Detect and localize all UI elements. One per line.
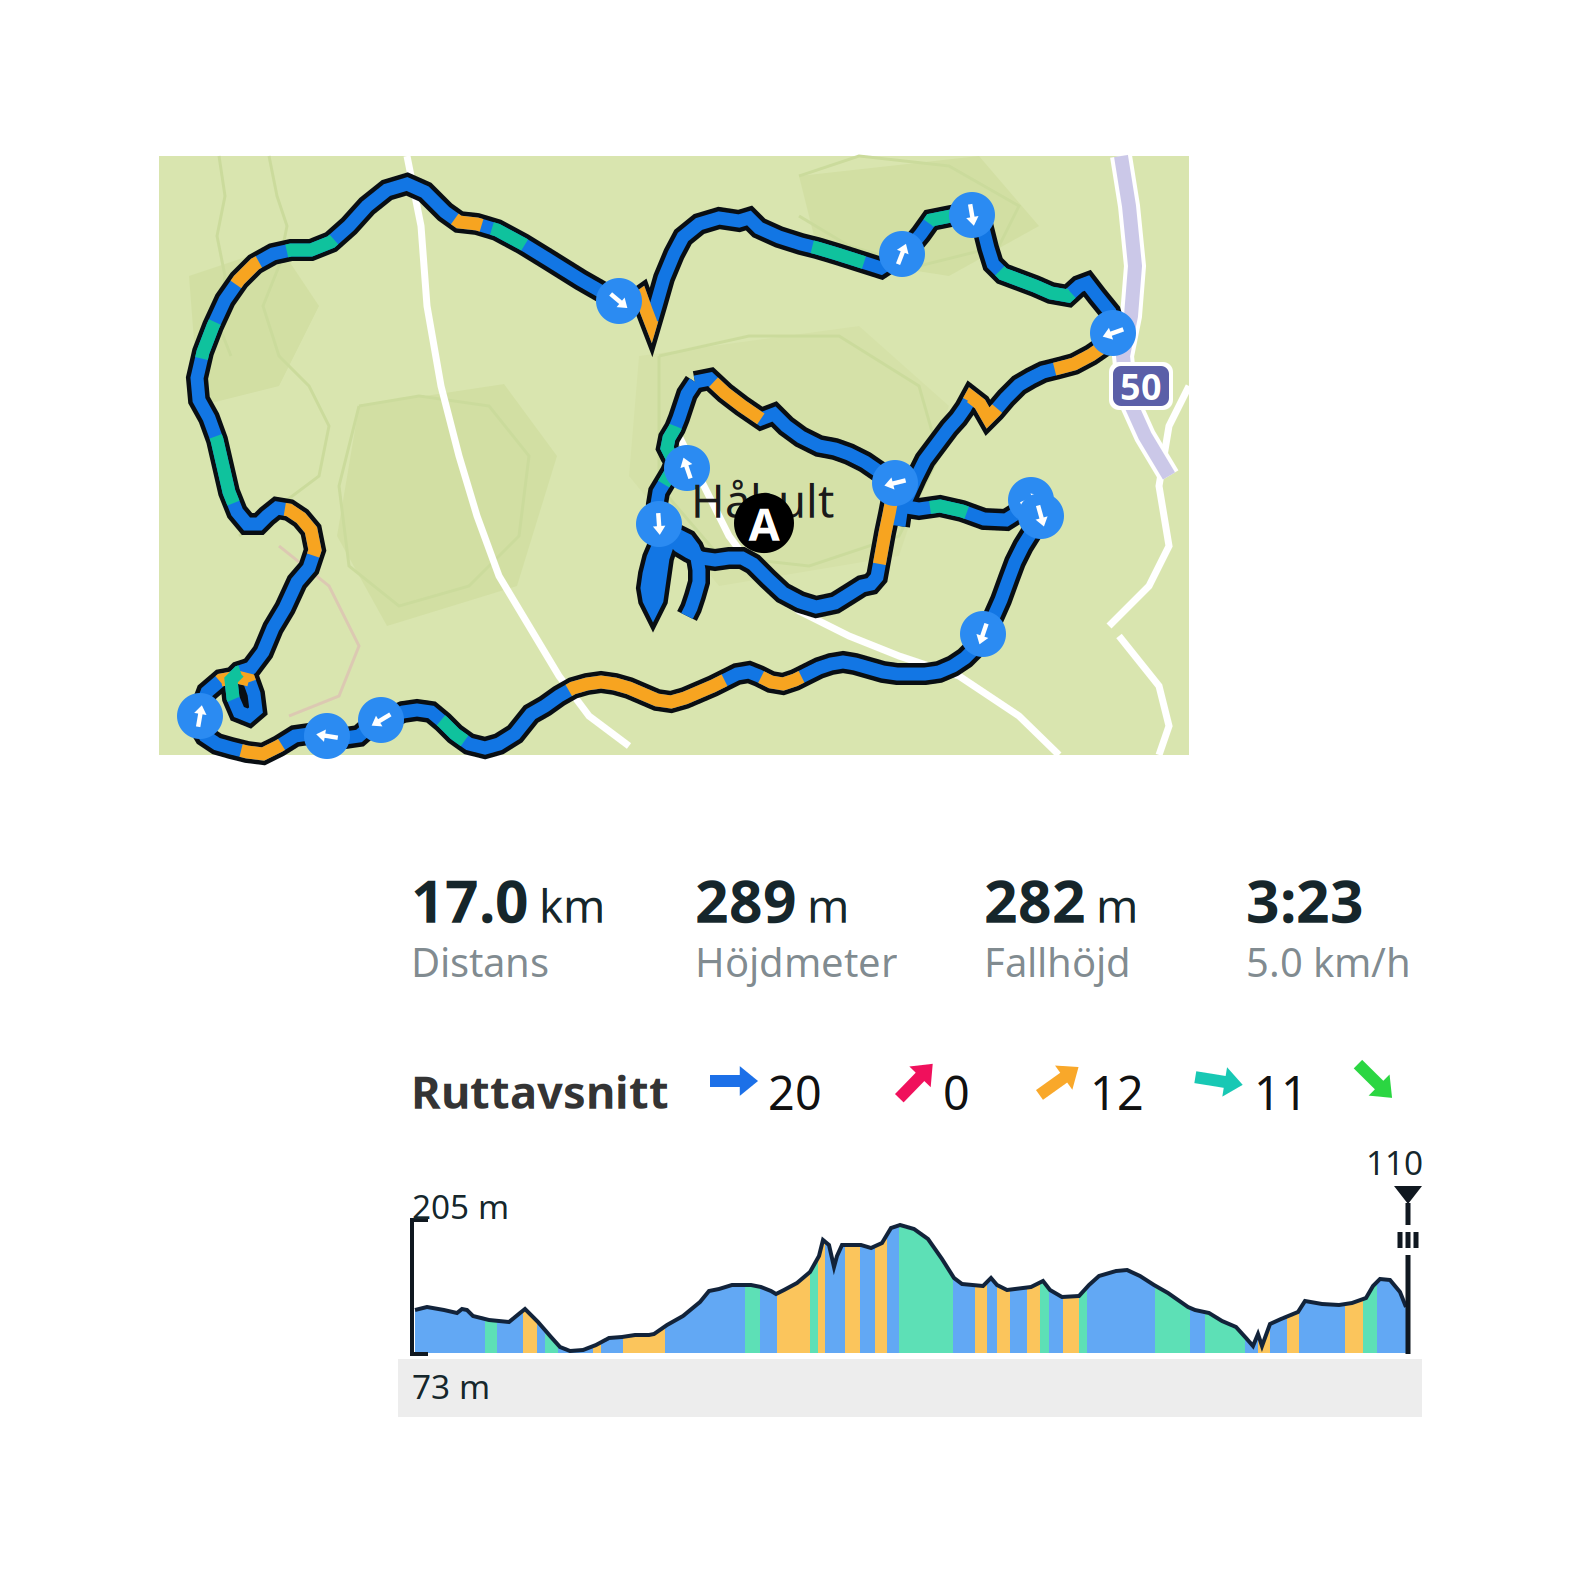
staticText: 5.0 km/h xyxy=(1246,935,1411,988)
staticText: 289 xyxy=(695,861,797,939)
staticText: 20 xyxy=(768,1061,822,1123)
staticText: Fallhöjd xyxy=(984,935,1131,988)
staticText: 0 xyxy=(943,1061,970,1123)
staticText: m xyxy=(1096,875,1138,935)
staticText: A xyxy=(748,493,779,553)
staticText: 11 xyxy=(1254,1061,1308,1123)
staticText: km xyxy=(539,875,605,935)
staticText: Höjdmeter xyxy=(695,935,898,988)
staticText: 110 xyxy=(1366,1140,1423,1184)
staticText: 12 xyxy=(1090,1061,1144,1123)
staticText: m xyxy=(807,875,849,935)
staticText: 3:23 xyxy=(1246,861,1364,939)
staticText: Ruttavsnitt xyxy=(411,1061,669,1121)
staticText: 282 xyxy=(984,861,1086,939)
staticText: 50 xyxy=(1120,362,1162,410)
staticText: 17.0 xyxy=(411,861,529,939)
staticText: Distans xyxy=(411,935,549,988)
staticText: Håbult xyxy=(691,470,834,530)
staticText: 205 m xyxy=(412,1184,509,1228)
staticText: 73 m xyxy=(412,1364,490,1408)
